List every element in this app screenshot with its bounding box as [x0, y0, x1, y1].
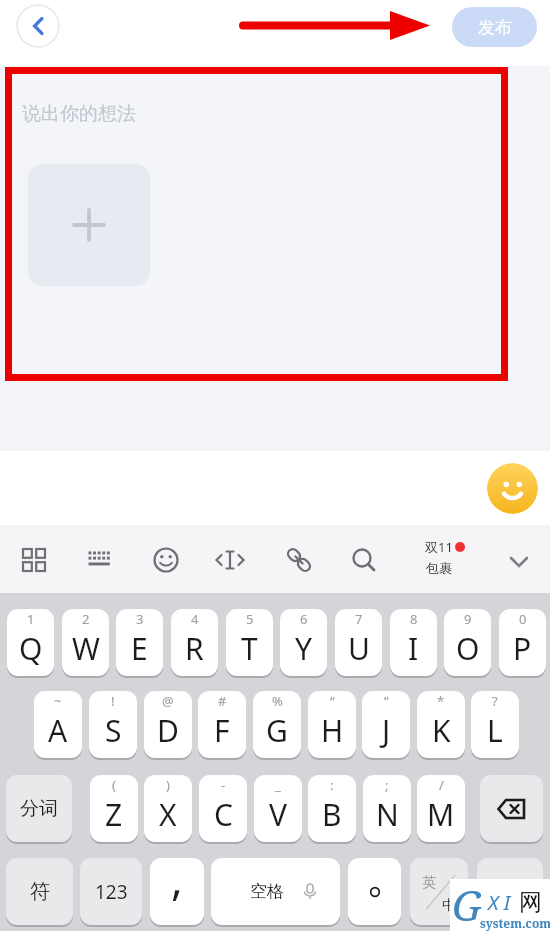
button[interactable]: @: [144, 691, 192, 758]
button[interactable]: [480, 775, 543, 842]
staticText: T: [241, 628, 258, 669]
button[interactable]: :: [308, 775, 356, 842]
staticText: R: [185, 628, 204, 669]
staticText: “: [330, 692, 335, 710]
button[interactable]: 9: [444, 609, 491, 676]
staticText: 2: [82, 610, 90, 628]
button[interactable]: 6: [280, 609, 327, 676]
button[interactable]: [16, 4, 60, 48]
button[interactable]: 0: [499, 609, 546, 676]
button[interactable]: #: [198, 691, 246, 758]
button[interactable]: *: [417, 691, 465, 758]
button[interactable]: ~: [34, 691, 82, 758]
button[interactable]: [28, 164, 150, 286]
staticText: 123: [95, 879, 128, 905]
staticText: ;: [385, 776, 389, 794]
staticText: @: [162, 692, 174, 710]
staticText: Q: [19, 628, 43, 669]
staticText: 中: [442, 897, 456, 915]
staticText: 符: [30, 879, 50, 904]
button[interactable]: [477, 858, 543, 925]
button[interactable]: 2: [62, 609, 109, 676]
button[interactable]: (: [90, 775, 138, 842]
staticText: Y: [295, 628, 312, 669]
button[interactable]: 英: [410, 858, 468, 925]
staticText: 包裹: [426, 560, 452, 576]
staticText: 英: [422, 874, 436, 892]
button[interactable]: [487, 463, 538, 514]
button[interactable]: 1: [7, 609, 54, 676]
staticText: 3: [136, 610, 144, 628]
button[interactable]: ,: [150, 858, 204, 925]
button[interactable]: 发布: [452, 7, 537, 47]
staticText: :: [330, 776, 334, 794]
staticText: J: [382, 710, 391, 751]
button[interactable]: 符: [6, 858, 73, 925]
button[interactable]: -: [199, 775, 247, 842]
button[interactable]: [82, 543, 116, 577]
button[interactable]: 123: [80, 858, 142, 925]
button[interactable]: ;: [363, 775, 411, 842]
staticText: 4: [191, 610, 199, 628]
button[interactable]: 3: [116, 609, 163, 676]
button[interactable]: ): [144, 775, 192, 842]
staticText: 说出你的想法: [22, 102, 136, 126]
button[interactable]: 7: [335, 609, 382, 676]
button[interactable]: [17, 543, 51, 577]
button[interactable]: %: [253, 691, 301, 758]
staticText: B: [322, 794, 342, 835]
button[interactable]: /: [417, 775, 465, 842]
staticText: ,: [171, 858, 183, 908]
button[interactable]: 4: [171, 609, 218, 676]
staticText: U: [348, 628, 370, 669]
staticText: I: [408, 628, 419, 669]
button[interactable]: ?: [471, 691, 519, 758]
staticText: ): [166, 776, 170, 794]
staticText: A: [48, 710, 68, 751]
staticText: /: [439, 776, 444, 794]
button[interactable]: !: [89, 691, 137, 758]
button[interactable]: [213, 543, 247, 577]
staticText: H: [321, 710, 344, 751]
button[interactable]: 分词: [6, 775, 72, 842]
staticText: V: [269, 794, 287, 835]
button[interactable]: [502, 545, 536, 579]
staticText: 双11: [425, 538, 453, 556]
staticText: (: [112, 776, 116, 794]
staticText: Z: [105, 794, 123, 835]
staticText: 5: [246, 610, 254, 628]
staticText: 分词: [20, 797, 58, 821]
button[interactable]: 5: [226, 609, 273, 676]
staticText: X: [159, 794, 177, 835]
button[interactable]: 双11: [416, 538, 462, 576]
staticText: system.com: [480, 915, 550, 931]
staticText: *: [437, 692, 445, 710]
staticText: -: [221, 776, 226, 794]
staticText: X I: [488, 889, 511, 916]
staticText: #: [218, 692, 227, 710]
button[interactable]: [348, 858, 401, 925]
staticText: 发布: [478, 17, 512, 38]
staticText: S: [105, 710, 122, 751]
staticText: G: [452, 876, 482, 928]
staticText: 8: [410, 610, 418, 628]
button[interactable]: [149, 543, 183, 577]
button[interactable]: _: [254, 775, 302, 842]
staticText: 0: [519, 610, 527, 628]
staticText: G: [266, 710, 288, 751]
staticText: M: [427, 794, 455, 835]
staticText: W: [72, 628, 100, 669]
staticText: %: [272, 692, 283, 710]
staticText: ”: [384, 692, 389, 710]
staticText: 6: [300, 610, 308, 628]
button[interactable]: [347, 543, 381, 577]
staticText: P: [513, 628, 532, 669]
button[interactable]: 8: [390, 609, 437, 676]
button[interactable]: ”: [362, 691, 410, 758]
button[interactable]: [282, 543, 316, 577]
staticText: !: [111, 692, 115, 710]
button[interactable]: 空格: [211, 858, 340, 925]
staticText: ?: [492, 692, 498, 710]
staticText: E: [131, 628, 148, 669]
button[interactable]: “: [308, 691, 356, 758]
